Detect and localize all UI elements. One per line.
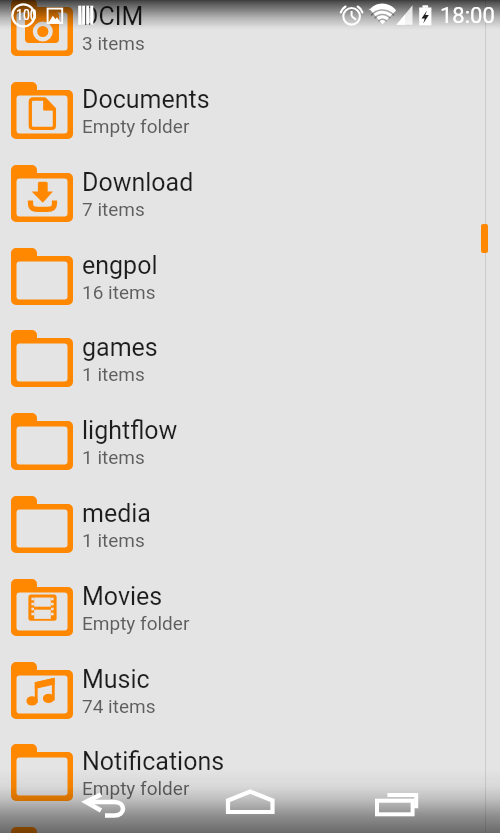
- staticText: lightflow: [82, 416, 178, 445]
- staticText: DCIM: [82, 2, 144, 31]
- staticText: media: [82, 499, 151, 528]
- button[interactable]: lightflow: [0, 413, 500, 496]
- staticText: 100: [16, 7, 37, 23]
- staticText: Empty folder: [82, 115, 190, 137]
- staticText: engpol: [82, 251, 158, 280]
- staticText: 3 items: [82, 32, 145, 54]
- button[interactable]: DCIM: [0, 0, 500, 82]
- staticText: 1 items: [82, 446, 145, 468]
- staticText: 18:00: [440, 3, 495, 29]
- staticText: Documents: [82, 85, 210, 114]
- staticText: Movies: [82, 582, 163, 611]
- button[interactable]: media: [0, 496, 500, 579]
- button[interactable]: Music: [0, 662, 500, 745]
- button[interactable]: engpol: [0, 248, 500, 331]
- staticText: 1 items: [82, 363, 145, 385]
- button[interactable]: Movies: [0, 579, 500, 662]
- staticText: 74 items: [82, 695, 156, 717]
- staticText: 16 items: [82, 281, 156, 303]
- button[interactable]: Notifications: [0, 744, 500, 827]
- staticText: Music: [82, 665, 150, 694]
- staticText: Empty folder: [82, 777, 190, 799]
- staticText: games: [82, 333, 158, 362]
- button[interactable]: Pictures: [0, 827, 500, 833]
- staticText: Download: [82, 168, 194, 197]
- button[interactable]: Documents: [0, 82, 500, 165]
- button[interactable]: Download: [0, 165, 500, 248]
- button[interactable]: Recents: [371, 784, 427, 820]
- button[interactable]: Back: [76, 786, 138, 824]
- staticText: 7 items: [82, 198, 145, 220]
- button[interactable]: Home: [220, 784, 282, 822]
- staticText: Notifications: [82, 747, 225, 776]
- button[interactable]: games: [0, 330, 500, 413]
- staticText: 1 items: [82, 529, 145, 551]
- staticText: Empty folder: [82, 612, 190, 634]
